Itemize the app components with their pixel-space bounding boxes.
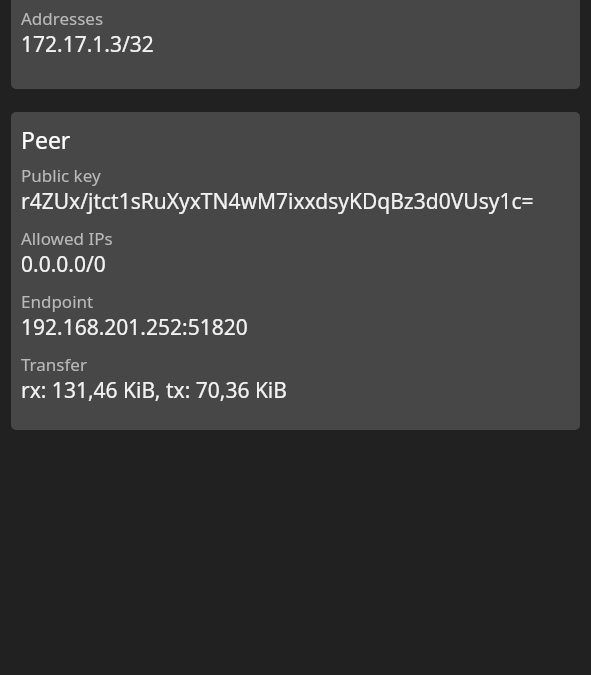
button[interactable]: Public key bbox=[11, 0, 580, 89]
staticText: Transfer bbox=[21, 353, 87, 376]
staticText: Endpoint bbox=[21, 290, 94, 313]
staticText: 192.168.201.252:51820 bbox=[21, 313, 248, 342]
staticText: 172.17.1.3/32 bbox=[21, 30, 154, 59]
button[interactable]: Peer bbox=[11, 112, 580, 430]
staticText: rx: 131,46 KiB, tx: 70,36 KiB bbox=[21, 376, 287, 405]
staticText: Addresses bbox=[21, 7, 104, 30]
staticText: Peer bbox=[21, 124, 71, 155]
staticText: r4ZUx/jtct1sRuXyxTN4wM7ixxdsyKDqBz3d0VUs… bbox=[21, 187, 534, 216]
staticText: 0.0.0.0/0 bbox=[21, 250, 106, 279]
staticText: Public key bbox=[21, 164, 101, 187]
staticText: Allowed IPs bbox=[21, 227, 113, 250]
